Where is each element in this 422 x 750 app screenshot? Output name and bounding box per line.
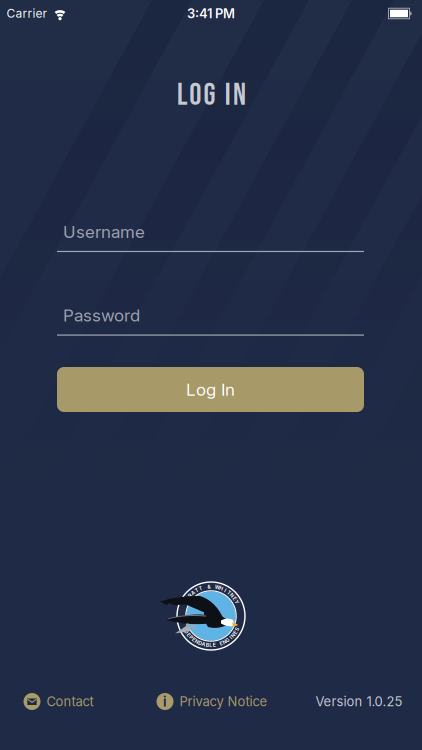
staticText: I: [230, 635, 231, 641]
staticText: Password: [63, 305, 140, 325]
staticText: E: [234, 629, 237, 635]
staticText: T: [199, 586, 202, 592]
staticText: E: [220, 640, 223, 646]
staticText: I: [225, 77, 231, 114]
staticText: Username: [63, 222, 145, 242]
staticText: N: [230, 592, 234, 598]
staticText: A: [202, 641, 206, 647]
staticText: A: [191, 590, 195, 596]
staticText: L: [177, 77, 187, 114]
staticText: D: [184, 629, 188, 635]
staticText: D: [198, 640, 202, 646]
staticText: O: [189, 77, 201, 114]
staticText: E: [187, 632, 190, 638]
staticText: R: [188, 593, 191, 598]
staticText: L: [209, 642, 212, 648]
staticText: T: [227, 590, 230, 596]
staticText: I: [225, 587, 226, 593]
staticText: 3:41 PM: [187, 6, 235, 21]
staticText: Privacy Notice: [179, 694, 267, 709]
staticText: E: [192, 637, 195, 643]
staticText: H: [219, 586, 223, 591]
staticText: N: [195, 639, 199, 645]
staticText: i: [163, 694, 167, 709]
button[interactable]: Log In: [57, 367, 364, 412]
staticText: Log In: [186, 379, 235, 400]
staticText: N: [223, 639, 227, 645]
staticText: T: [195, 587, 198, 593]
button[interactable]: i: [156, 686, 267, 716]
button[interactable]: Contact: [23, 686, 93, 716]
staticText: Y: [235, 599, 239, 605]
staticText: G: [203, 77, 215, 114]
staticText: E: [213, 642, 216, 648]
staticText: S: [236, 626, 239, 632]
staticText: N: [233, 77, 246, 114]
button[interactable]: Username: [57, 222, 364, 252]
staticText: &: [207, 584, 210, 590]
staticText: G: [226, 637, 230, 643]
staticText: Version 1.0.25: [315, 694, 402, 709]
button[interactable]: Password: [57, 305, 364, 336]
staticText: P: [190, 634, 193, 640]
staticText: B: [206, 642, 209, 648]
staticText: Carrier: [6, 6, 47, 21]
staticText: P: [186, 596, 189, 602]
staticText: Contact: [46, 694, 93, 709]
staticText: E: [233, 596, 236, 602]
staticText: W: [215, 584, 220, 590]
staticText: N: [231, 632, 235, 638]
